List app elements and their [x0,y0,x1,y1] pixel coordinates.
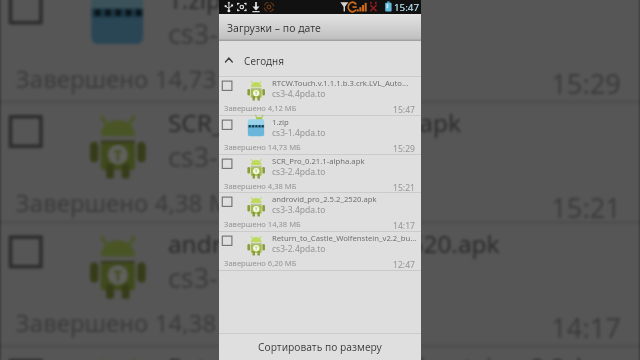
staticText: cs3-2.4pda.to [272,243,326,255]
button[interactable]: SCR_Pro_0.21.1-alpha.apk [219,154,421,193]
staticText: 14:17 [551,310,621,348]
staticText: Завершено 14,73 МБ [224,142,301,152]
button[interactable]: 1.zip [219,115,421,154]
button[interactable]: Return_to_Castle_Wolfenstein_v2.2_bu... [219,231,421,270]
staticText: androvid_pro_2.5.2_2520.apk [272,194,420,204]
button[interactable]: Сортировать по размеру [219,333,421,360]
staticText: SCR_Pro_0.21.1-alpha.apk [272,156,420,166]
staticText: Return_to_Castle_Wolfenstein_v2.2_bu... [168,351,637,360]
staticText: androvid_pro_2.5.2_2520.apk [168,227,637,259]
button[interactable]: Сегодня [219,41,421,77]
staticText: SCR_Pro_0.21.1-alpha.apk [168,107,637,139]
staticText: cs3-1.4pda.to [168,15,339,53]
staticText: 15:21 [393,182,415,194]
staticText: 15:21 [551,189,621,227]
staticText: cs3-1.4pda.to [272,127,326,139]
staticText: Return_to_Castle_Wolfenstein_v2.2_bu... [272,233,420,243]
staticText: 15:29 [393,143,415,155]
staticText: Сегодня [244,54,285,68]
staticText: Завершено 4,38 МБ [16,186,247,218]
button[interactable]: RTCW.Touch.v.1.1.1.b.3.crk.LVL_Auto... [219,76,421,115]
staticText: 15:47 [393,104,415,116]
staticText: Завершено 6,20 МБ [224,258,297,268]
button[interactable]: 1.zip [0,0,640,101]
staticText: 1.zip [168,0,637,15]
staticText: 15:29 [551,66,621,104]
staticText: cs3-2.4pda.to [272,166,326,178]
button[interactable]: Загрузки – по дате [219,14,421,41]
staticText: 12:47 [393,259,415,271]
staticText: cs3-2.4pda.to [168,139,339,177]
staticText: 1.zip [272,117,420,127]
staticText: Завершено 14,38 МБ [224,219,301,229]
staticText: Завершено 14,73 МБ [16,63,260,94]
button[interactable]: SCR_Pro_0.21.1-alpha.apk [0,101,640,224]
staticText: 14:17 [393,220,415,232]
staticText: Завершено 14,38 МБ [16,307,260,338]
staticText: 15:47 [394,1,420,14]
staticText: cs3-3.4pda.to [272,204,326,216]
staticText: RTCW.Touch.v.1.1.1.b.3.crk.LVL_Auto... [272,78,420,88]
staticText: Завершено 4,38 МБ [224,181,297,191]
staticText: cs3-4.4pda.to [272,88,326,100]
staticText: Сортировать по размеру [258,340,382,354]
staticText: Завершено 4,12 МБ [224,103,297,113]
button[interactable]: Return_to_Castle_Wolfenstein_v2.2_bu... [0,345,640,360]
staticText: cs3-3.4pda.to [168,259,339,297]
button[interactable]: androvid_pro_2.5.2_2520.apk [0,221,640,345]
staticText: Загрузки – по дате [227,21,321,35]
button[interactable]: androvid_pro_2.5.2_2520.apk [219,192,421,231]
